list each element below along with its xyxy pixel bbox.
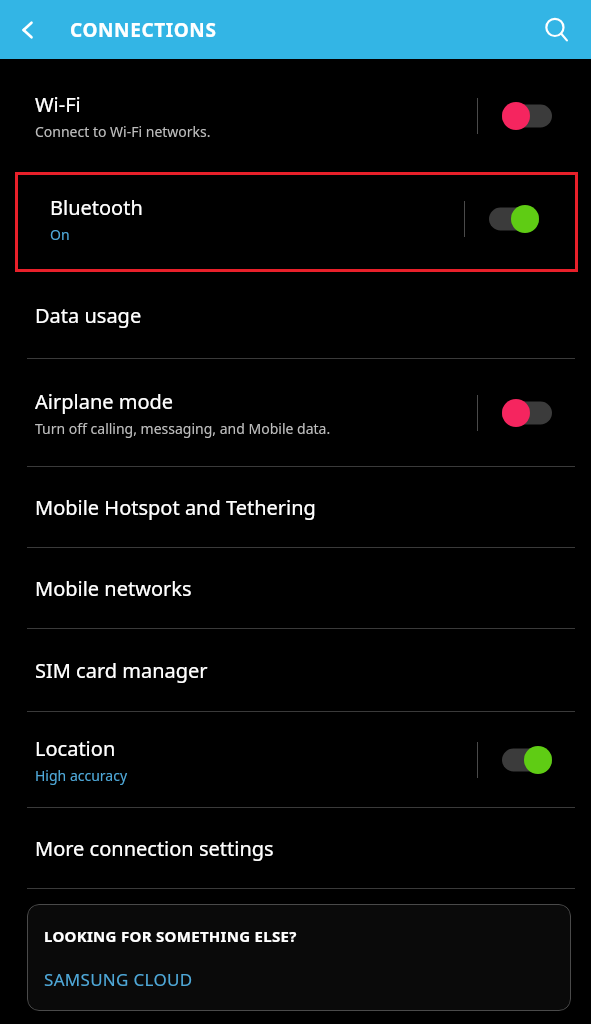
button[interactable]: More connection settings bbox=[0, 808, 591, 888]
button[interactable]: Airplane mode bbox=[0, 359, 591, 466]
staticText: Data usage bbox=[35, 302, 142, 329]
staticText: Mobile networks bbox=[35, 575, 192, 602]
staticText: More connection settings bbox=[35, 835, 274, 862]
staticText: On bbox=[50, 225, 70, 244]
staticText: Bluetooth bbox=[50, 194, 143, 221]
button[interactable]: SIM card manager bbox=[0, 629, 591, 711]
staticText: SIM card manager bbox=[35, 657, 208, 684]
button[interactable]: Bluetooth bbox=[15, 172, 578, 266]
button[interactable]: Mobile Hotspot and Tethering bbox=[0, 467, 591, 547]
button[interactable]: Location bbox=[0, 712, 591, 807]
button[interactable]: LOOKING FOR SOMETHING ELSE? bbox=[27, 904, 571, 1011]
staticText: Airplane mode bbox=[35, 388, 174, 415]
staticText: SAMSUNG CLOUD bbox=[44, 968, 193, 991]
staticText: LOOKING FOR SOMETHING ELSE? bbox=[44, 926, 297, 946]
staticText: Mobile Hotspot and Tethering bbox=[35, 494, 316, 521]
button[interactable]: Search bbox=[529, 2, 585, 58]
button[interactable]: Toggle on bbox=[502, 746, 552, 774]
staticText: Location bbox=[35, 735, 116, 762]
button[interactable]: Mobile networks bbox=[0, 548, 591, 628]
button[interactable]: Wi-Fi bbox=[0, 59, 591, 172]
staticText: Connect to Wi-Fi networks. bbox=[35, 122, 211, 141]
button[interactable]: Toggle on bbox=[489, 205, 539, 233]
staticText: High accuracy bbox=[35, 766, 128, 785]
button[interactable]: Toggle off bbox=[502, 399, 552, 427]
staticText: Turn off calling, messaging, and Mobile … bbox=[35, 419, 331, 438]
button[interactable]: Data usage bbox=[0, 272, 591, 358]
button[interactable]: Toggle off bbox=[502, 102, 552, 130]
staticText: Wi-Fi bbox=[35, 91, 81, 118]
staticText: CONNECTIONS bbox=[70, 17, 217, 43]
button[interactable]: Back bbox=[0, 2, 56, 58]
